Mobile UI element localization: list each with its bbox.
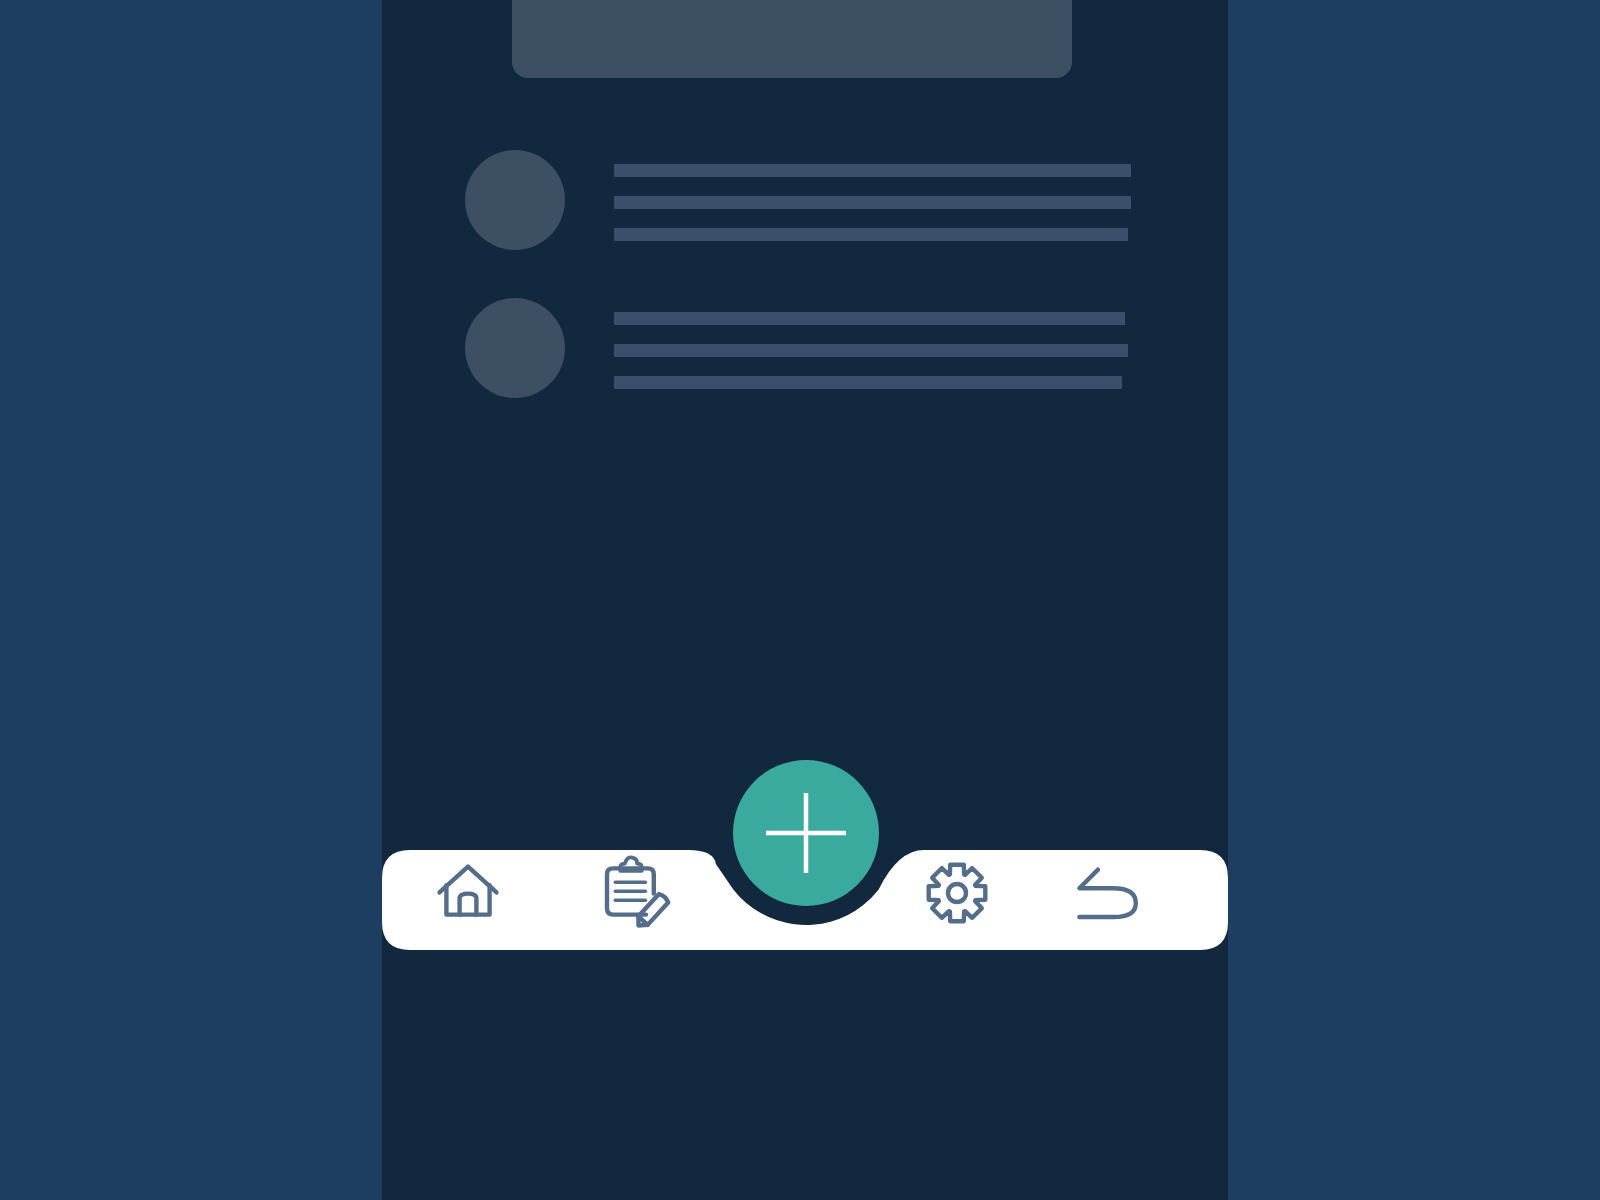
button[interactable]: Home <box>382 850 554 950</box>
button[interactable] <box>382 295 1228 410</box>
button[interactable]: Back <box>1070 850 1228 950</box>
button[interactable] <box>382 145 1228 260</box>
button[interactable]: Notes <box>554 850 720 950</box>
button[interactable]: Add <box>733 760 879 906</box>
button[interactable]: Settings <box>904 850 1070 950</box>
